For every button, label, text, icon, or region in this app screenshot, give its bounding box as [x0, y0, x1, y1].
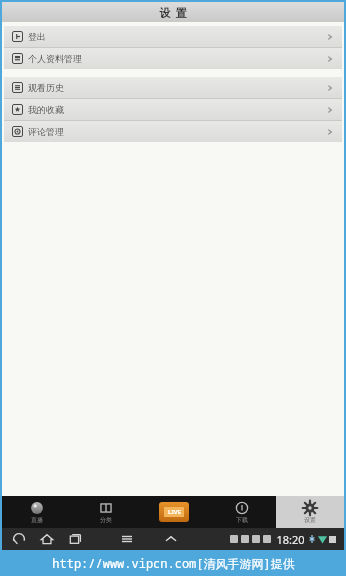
button[interactable]: Recent apps	[66, 530, 84, 548]
staticText: http://www.vipcn.com[清风手游网]提供	[52, 555, 295, 571]
button[interactable]: 直播	[2, 496, 71, 528]
button[interactable]: 分类	[71, 496, 140, 528]
button[interactable]: Back	[10, 530, 28, 548]
staticText: LIVE	[168, 508, 181, 516]
staticText: 分类	[100, 516, 112, 524]
staticText: 登出	[28, 31, 46, 42]
button[interactable]: Expand	[162, 530, 180, 548]
button[interactable]: Home	[38, 530, 56, 548]
button[interactable]: Menu	[118, 530, 136, 548]
button[interactable]: 个人资料管理	[4, 48, 342, 69]
button[interactable]: 观看历史	[4, 77, 342, 98]
button[interactable]: 设置	[276, 496, 344, 528]
button[interactable]: 评论管理	[4, 121, 342, 142]
button[interactable]: 我的收藏	[4, 99, 342, 120]
button[interactable]: 登出	[4, 26, 342, 47]
staticText: 个人资料管理	[28, 53, 82, 64]
staticText: 直播	[31, 516, 43, 524]
staticText: 下载	[236, 516, 248, 524]
staticText: 设 置	[159, 5, 187, 20]
button[interactable]: 直播间	[140, 496, 208, 528]
staticText: 观看历史	[28, 82, 64, 93]
staticText: 评论管理	[28, 126, 64, 137]
staticText: 我的收藏	[28, 104, 64, 115]
staticText: 设置	[304, 516, 316, 524]
button[interactable]: 下载	[208, 496, 276, 528]
staticText: 18:20	[276, 532, 305, 547]
